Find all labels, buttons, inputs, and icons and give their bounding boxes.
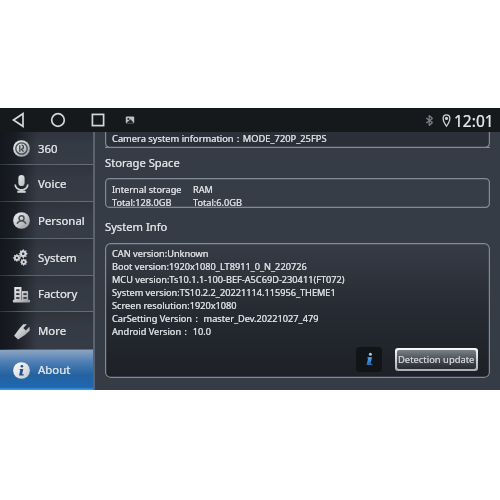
button[interactable]: About (0, 350, 93, 390)
button[interactable]: Recent apps (85, 108, 111, 132)
button[interactable]: Personal (0, 202, 93, 239)
staticText: 360 (38, 141, 58, 157)
button[interactable]: System (0, 239, 93, 276)
button[interactable]: Factory (0, 276, 93, 312)
staticText: Total:6.0GB (193, 196, 242, 208)
staticText: CarSetting Version： master_Dev.20221027_… (112, 312, 319, 325)
staticText: Android Version： 10.0 (112, 325, 211, 338)
staticText: Detection update (398, 353, 475, 366)
button[interactable]: Voice (0, 165, 93, 202)
staticText: System version:TS10.2.2_20221114.115956_… (112, 286, 336, 299)
button[interactable]: Screenshot (120, 108, 140, 132)
staticText: 12:01 (454, 110, 494, 131)
button[interactable]: 360 (0, 132, 93, 165)
staticText: Personal (38, 213, 85, 229)
staticText: Storage Space (105, 155, 180, 170)
staticText: Total:128.0GB (112, 196, 172, 208)
staticText: More (38, 323, 67, 339)
button[interactable]: Information (356, 347, 382, 372)
staticText: Boot version:1920x1080_LT8911_0_N_220726 (112, 260, 307, 273)
staticText: Voice (38, 176, 67, 192)
staticText: About (38, 362, 71, 378)
staticText: RAM (193, 183, 213, 196)
staticText: CAN version:Unknown (112, 247, 209, 260)
button[interactable]: Detection update (397, 350, 476, 369)
staticText: MCU version:Ts10.1.1-100-BEF-A5C69D-2304… (112, 273, 345, 286)
button[interactable]: Back (6, 108, 32, 132)
staticText: Internal storage (112, 183, 182, 196)
staticText: Camera system information：MODE_720P_25FP… (112, 132, 327, 144)
staticText: Factory (38, 286, 78, 302)
staticText: Screen resolution:1920x1080 (112, 299, 237, 312)
staticText: System Info (105, 219, 168, 234)
button[interactable]: More (0, 312, 93, 350)
button[interactable]: Home (45, 108, 71, 132)
staticText: System (38, 250, 77, 266)
